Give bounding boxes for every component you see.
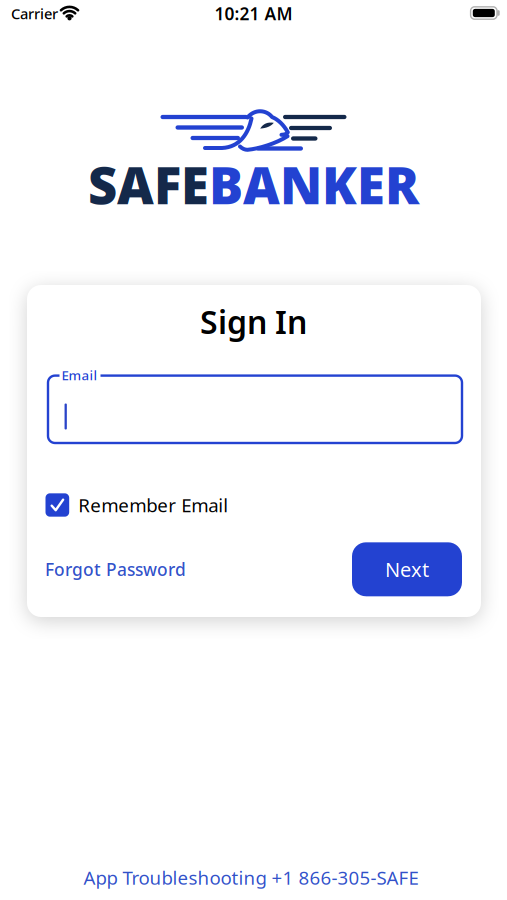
staticText: Next [385, 556, 429, 583]
button[interactable] [48, 376, 462, 443]
staticText: Remember Email [78, 493, 228, 517]
staticText: Sign In [200, 300, 307, 343]
button[interactable]: Remember Email [45, 490, 459, 520]
staticText: Forgot Password [45, 558, 186, 581]
staticText: BANKER [209, 151, 419, 218]
staticText: 10:21 AM [214, 2, 292, 25]
staticText: Carrier [11, 4, 58, 23]
button[interactable]: Next [352, 542, 462, 596]
staticText: App Troubleshooting +1 866-305-SAFE [83, 865, 418, 890]
staticText: SAFE [88, 151, 209, 218]
button[interactable]: Forgot Password [45, 558, 186, 581]
button[interactable]: App Troubleshooting +1 866-305-SAFE [83, 865, 418, 890]
staticText: Email [61, 366, 97, 384]
